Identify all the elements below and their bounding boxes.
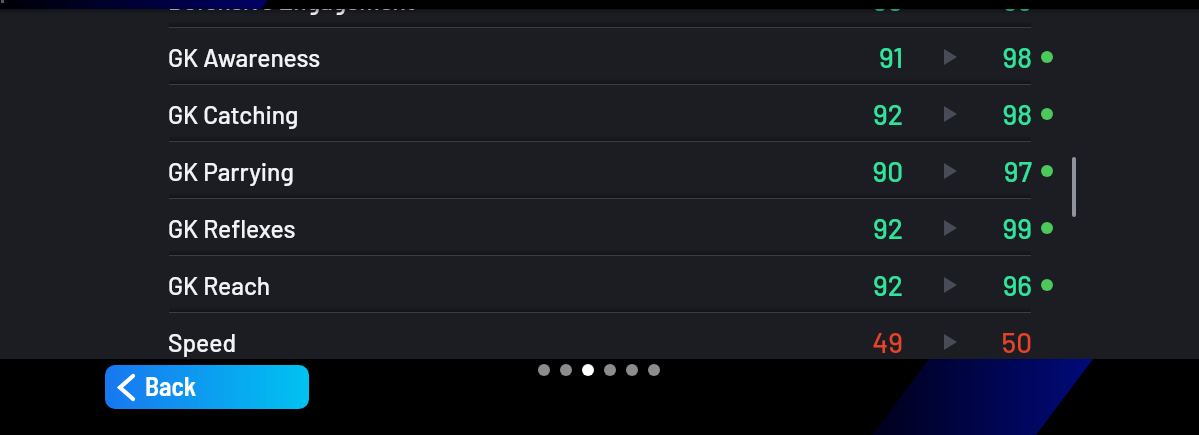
staticText: 92 xyxy=(873,97,903,131)
staticText: 98 xyxy=(1002,40,1032,74)
staticText: GK Reflexes xyxy=(168,213,296,243)
staticText: 90 xyxy=(872,154,903,188)
button[interactable]: Page 6 xyxy=(648,364,660,376)
button[interactable]: Page 4 xyxy=(604,364,616,376)
staticText: GK Parrying xyxy=(168,156,294,186)
staticText: Defensive Engagement xyxy=(168,0,415,15)
staticText: 92 xyxy=(873,268,903,302)
button[interactable]: Page 1 xyxy=(538,364,550,376)
button[interactable]: GK Reflexes xyxy=(0,199,1199,256)
staticText: 96 xyxy=(1002,268,1032,302)
button[interactable]: GK Reach xyxy=(0,256,1199,313)
staticText: 96 xyxy=(1002,0,1032,17)
button[interactable]: Page 3 xyxy=(582,364,594,376)
staticText: 90 xyxy=(872,0,903,17)
staticText: 99 xyxy=(1002,211,1032,245)
staticText: Back xyxy=(145,370,197,401)
button[interactable]: Page 2 xyxy=(560,364,572,376)
staticText: 91 xyxy=(879,40,903,74)
staticText: 50 xyxy=(1001,325,1032,359)
staticText: Speed xyxy=(168,327,237,357)
staticText: 49 xyxy=(872,325,903,359)
button[interactable]: Defensive Engagement xyxy=(0,0,1199,28)
staticText: 92 xyxy=(873,211,903,245)
button[interactable]: Back xyxy=(105,365,309,409)
staticText: 98 xyxy=(1002,97,1032,131)
staticText: 97 xyxy=(1003,154,1032,188)
staticText: GK Awareness xyxy=(168,42,321,72)
button[interactable]: GK Parrying xyxy=(0,142,1199,199)
button[interactable]: Speed xyxy=(0,313,1199,370)
staticText: GK Catching xyxy=(168,99,299,129)
staticText: GK Reach xyxy=(168,270,271,300)
button[interactable]: GK Catching xyxy=(0,85,1199,142)
button[interactable]: GK Awareness xyxy=(0,28,1199,85)
button[interactable]: Page 5 xyxy=(626,364,638,376)
